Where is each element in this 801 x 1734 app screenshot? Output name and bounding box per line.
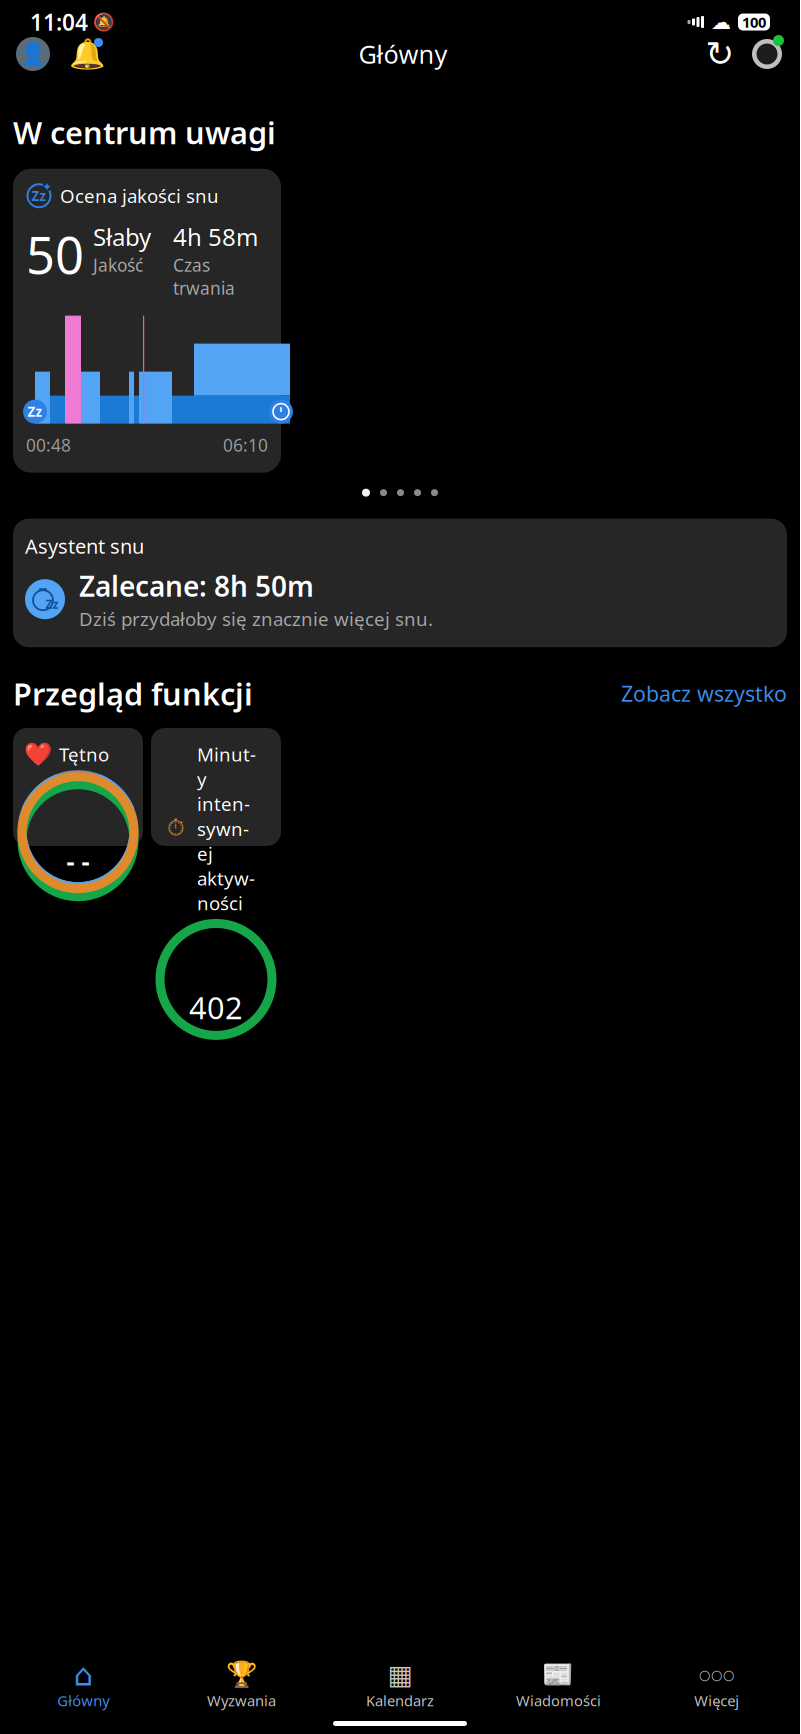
staticText: 4h 58m [173, 221, 258, 253]
staticText: 📰 [542, 1660, 574, 1689]
staticText: Główny [358, 37, 447, 71]
staticText: Minuty intensywnej aktywności [197, 742, 256, 915]
button[interactable]: Zz [13, 169, 281, 473]
staticText: Zobacz wszystko [621, 679, 787, 708]
staticText: Główny [57, 1691, 109, 1710]
staticText: ❤️ [24, 741, 52, 767]
staticText: Czas trwania [173, 254, 235, 300]
staticText: 11:04 [30, 7, 88, 37]
staticText: Zalecane: 8h 50m [79, 567, 314, 604]
staticText: ○○○ [699, 1667, 735, 1682]
staticText: W centrum uwagi [13, 112, 276, 153]
staticText: Kalendarz [366, 1691, 434, 1710]
staticText: 00:48 [26, 434, 71, 457]
staticText: Zz [45, 596, 58, 612]
button[interactable]: Zobacz wszystko [621, 679, 787, 708]
button[interactable]: Zegarek [750, 36, 784, 72]
staticText: Tętno [59, 742, 109, 767]
staticText: Zz [31, 187, 46, 205]
staticText: Więcej [694, 1691, 739, 1710]
staticText: - - [66, 844, 89, 877]
staticText: Wiadomości [516, 1691, 601, 1710]
staticText: 🔕 [93, 12, 115, 32]
staticText: Słaby [93, 221, 151, 253]
staticText: ⌂ [74, 1657, 93, 1692]
staticText: Jakość [93, 254, 143, 277]
staticText: Przegląd funkcji [13, 673, 253, 714]
button[interactable]: ⌂ [4, 1656, 162, 1714]
staticText: 100 [742, 12, 766, 32]
button[interactable]: 🏆 [162, 1656, 321, 1714]
staticText: 👤 [19, 42, 46, 66]
staticText: ⏱ [167, 818, 185, 840]
staticText: ✦ [42, 180, 52, 193]
staticText: 06:10 [223, 434, 268, 457]
button[interactable]: ⏱ [151, 728, 281, 846]
staticText: 🏆 [226, 1660, 258, 1689]
staticText: 50 [26, 221, 84, 288]
staticText: 🔔 [68, 37, 105, 71]
staticText: ☁ [711, 11, 731, 33]
button[interactable]: Synchronizuj [704, 38, 736, 70]
button[interactable]: ▦ [321, 1656, 479, 1714]
button[interactable]: ○○○ [638, 1656, 796, 1714]
staticText: ▦ [387, 1660, 412, 1690]
button[interactable]: Profil [16, 37, 50, 71]
staticText: Asystent snu [25, 533, 144, 559]
staticText: 402 [189, 987, 243, 1028]
staticText: Zz [27, 403, 42, 420]
button[interactable]: ❤️ [13, 728, 143, 846]
staticText: Dziś przydałoby się znacznie więcej snu. [79, 606, 433, 631]
button[interactable]: Asystent snu [13, 519, 787, 647]
button[interactable]: 📰 [479, 1656, 638, 1714]
button[interactable]: Powiadomienia [72, 39, 102, 69]
staticText: Wyzwania [207, 1691, 276, 1710]
staticText: Ocena jakości snu [60, 183, 219, 208]
staticText: ↻ [705, 34, 734, 74]
